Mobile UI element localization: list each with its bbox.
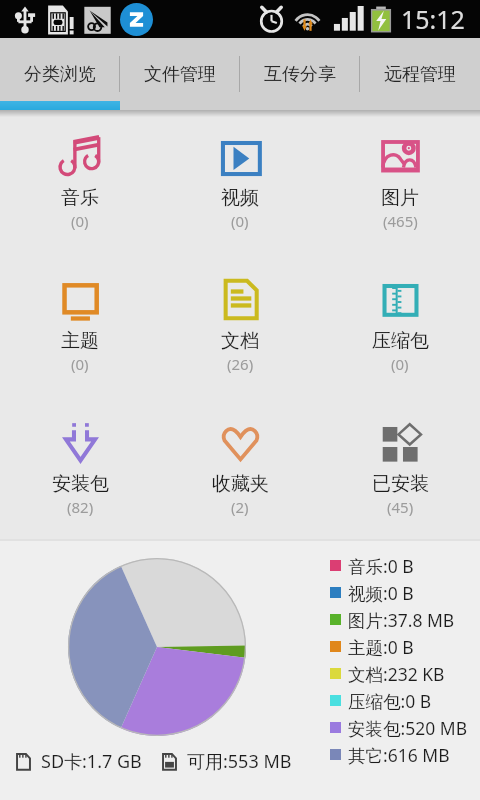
staticText: (465) <box>383 211 418 231</box>
other: Battery charging <box>369 6 393 33</box>
button[interactable]: 音乐 (0) <box>0 110 160 253</box>
button[interactable]: 文件管理 <box>120 38 240 110</box>
staticText: 可用:553 MB <box>187 749 292 774</box>
staticText: (45) <box>387 497 414 517</box>
staticText: 压缩包:0 B <box>348 689 432 713</box>
staticText: 主题:0 B <box>348 635 414 659</box>
other: SD card <box>46 5 76 35</box>
staticText: 已安装 <box>372 472 429 496</box>
other: SD card total <box>15 752 32 771</box>
staticText: 音乐 <box>61 186 99 210</box>
button[interactable]: 分类浏览 <box>0 38 120 110</box>
staticText: (26) <box>227 354 254 374</box>
button[interactable]: 已安装 (45) <box>320 396 480 539</box>
button[interactable]: 收藏夹 (2) <box>160 396 320 539</box>
button[interactable]: 视频 (0) <box>160 110 320 253</box>
other: Wi-Fi <box>295 6 320 33</box>
staticText: 压缩包 <box>372 329 429 353</box>
other: Alarm set <box>258 5 285 33</box>
other: Zapya <box>119 3 154 36</box>
staticText: 视频 <box>221 186 259 210</box>
other: Signal strength <box>333 6 364 32</box>
staticText: 主题 <box>61 329 99 353</box>
button[interactable]: 文档 (26) <box>160 253 320 396</box>
button[interactable]: 压缩包 (0) <box>320 253 480 396</box>
button[interactable]: 主题 (0) <box>0 253 160 396</box>
other: Screenshot tool <box>83 5 116 35</box>
other: SD card free <box>161 752 178 771</box>
staticText: (0) <box>391 354 409 374</box>
staticText: 图片 <box>381 186 419 210</box>
staticText: (2) <box>231 497 249 517</box>
button[interactable]: 图片 (465) <box>320 110 480 253</box>
staticText: 互传分享 <box>264 63 336 86</box>
button[interactable]: 安装包 (82) <box>0 396 160 539</box>
staticText: 视频:0 B <box>348 581 414 605</box>
staticText: 图片:37.8 MB <box>348 608 455 632</box>
staticText: SD卡:1.7 GB <box>41 749 142 774</box>
staticText: 文件管理 <box>144 63 216 86</box>
staticText: 分类浏览 <box>24 63 96 86</box>
staticText: 文档 <box>221 329 259 353</box>
staticText: 文档:232 KB <box>348 662 445 686</box>
staticText: 其它:616 MB <box>348 743 450 767</box>
staticText: (0) <box>71 354 89 374</box>
staticText: (82) <box>67 497 94 517</box>
button[interactable]: 互传分享 <box>240 38 360 110</box>
staticText: (0) <box>231 211 249 231</box>
staticText: 远程管理 <box>384 63 456 86</box>
staticText: 音乐:0 B <box>348 554 414 578</box>
other: USB connected <box>14 6 36 34</box>
staticText: 15:12 <box>401 2 465 36</box>
button[interactable]: 远程管理 <box>360 38 480 110</box>
staticText: 安装包 <box>52 472 109 496</box>
staticText: (0) <box>71 211 89 231</box>
other: Storage usage pie chart <box>68 558 246 736</box>
staticText: 收藏夹 <box>212 472 269 496</box>
staticText: 安装包:520 MB <box>348 716 468 740</box>
